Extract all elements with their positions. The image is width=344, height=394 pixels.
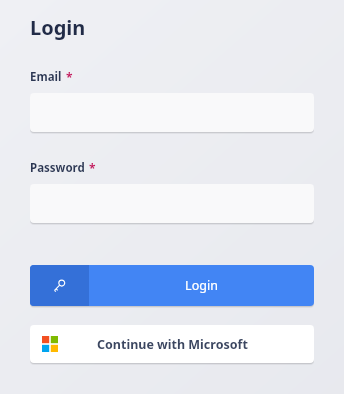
button[interactable]: Key [30,265,314,306]
staticText: Continue with Microsoft [97,336,248,353]
staticText: Login [185,277,218,294]
button[interactable]: Continue with Microsoft [30,325,314,363]
staticText: Password [30,160,85,176]
staticText: Email [30,69,62,85]
staticText: * [89,160,96,176]
other: Key [51,277,68,294]
staticText: * [66,69,73,85]
staticText: Login [30,14,86,41]
